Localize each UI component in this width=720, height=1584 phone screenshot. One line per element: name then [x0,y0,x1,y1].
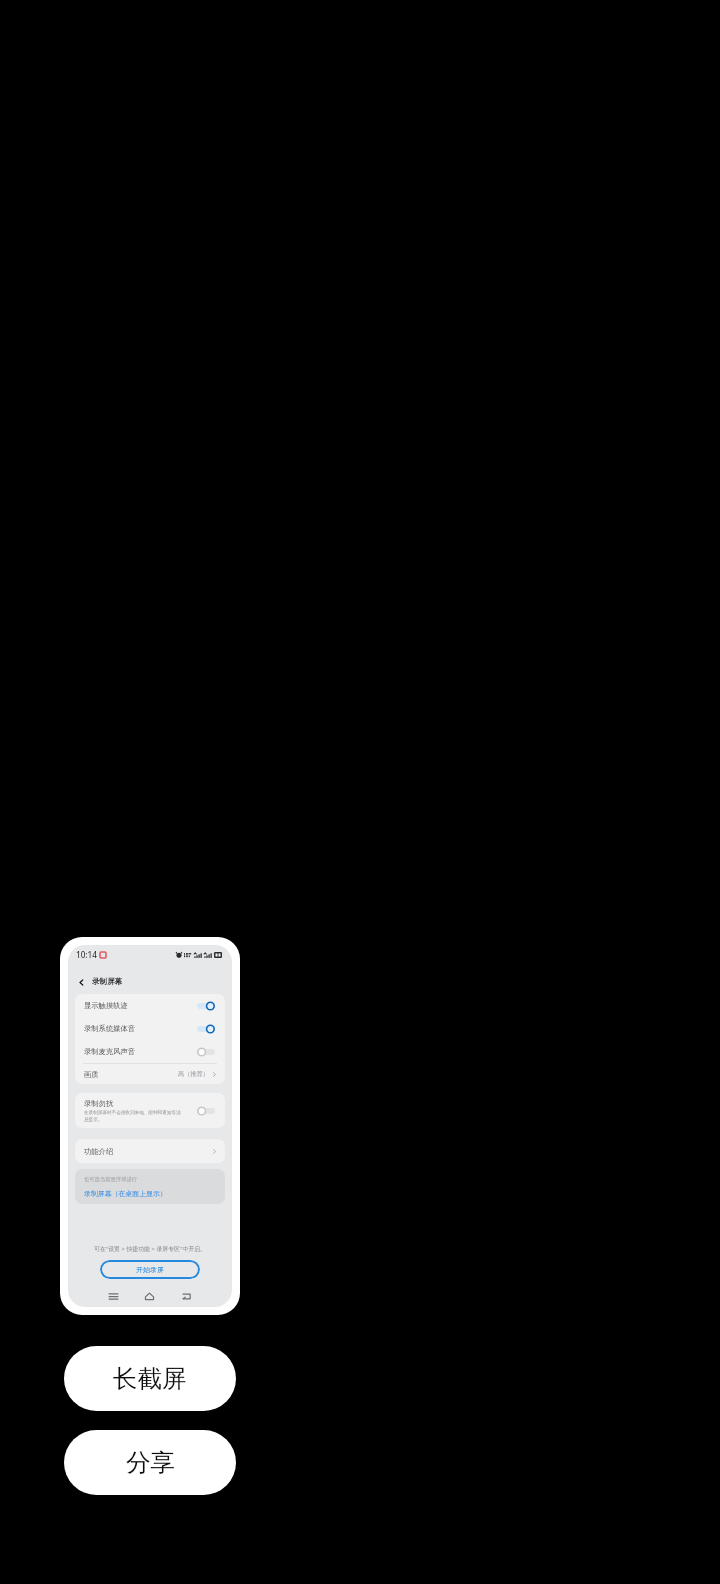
button[interactable] [197,1105,215,1117]
button[interactable]: Recents [107,1290,120,1303]
button[interactable]: 显示触摸轨迹 [84,994,215,1017]
button[interactable] [197,1000,215,1012]
staticText: 可在"设置 > 快捷功能 > 录屏专区"中开启。 [68,1245,232,1253]
button[interactable] [197,1046,215,1058]
staticText: 开始录屏 [136,1265,164,1274]
button[interactable] [197,1023,215,1035]
staticText: 功能介绍 [84,1147,114,1156]
staticText: 录制系统媒体音 [84,1024,136,1033]
button[interactable]: 画质 [84,1064,219,1084]
button[interactable]: Screenshot preview [60,937,240,1315]
button[interactable]: 也可选当前悬浮球进行 [75,1169,225,1204]
button[interactable]: Home [143,1290,156,1303]
staticText: 分享 [126,1447,175,1478]
staticText: 长截屏 [113,1363,187,1394]
button[interactable]: 开始录屏 [100,1260,200,1279]
staticText: 录制麦克风声音 [84,1047,136,1056]
staticText: 画质 [84,1070,99,1079]
staticText: 10:14 [76,949,97,960]
button[interactable]: 录制麦克风声音 [84,1040,215,1063]
staticText: 在录制屏幕时不会接收到来电、闹钟和通知等消息提示。 [84,1110,181,1122]
staticText: 录制屏幕（在桌面上显示） [84,1189,167,1198]
staticText: 显示触摸轨迹 [84,1001,128,1010]
staticText: 录制勿扰 [84,1099,114,1108]
button[interactable]: 功能介绍 [75,1139,225,1163]
button[interactable]: 长截屏 [64,1346,236,1411]
button[interactable]: 分享 [64,1430,236,1495]
button[interactable]: 录制系统媒体音 [84,1017,215,1040]
staticText: 录制屏幕 [92,977,123,987]
staticText: 也可选当前悬浮球进行 [84,1176,137,1183]
button[interactable]: Back [180,1290,193,1303]
staticText: 高（推荐） [178,1070,209,1078]
button[interactable]: Back [77,978,86,987]
